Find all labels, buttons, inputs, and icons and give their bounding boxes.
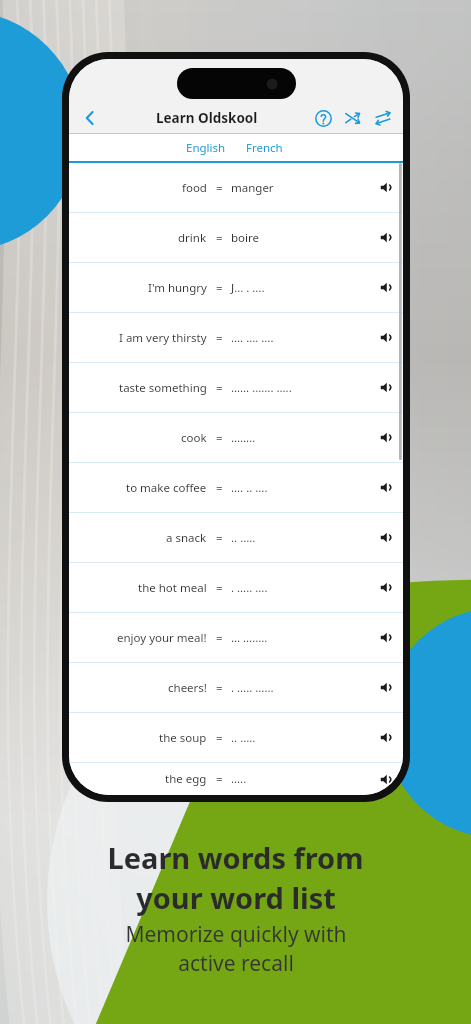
button[interactable]: the hot meal bbox=[69, 563, 403, 612]
button[interactable]: English bbox=[69, 134, 226, 161]
staticText: …….. bbox=[231, 430, 256, 446]
staticText: to make coffee bbox=[126, 480, 207, 496]
staticText: … …….. bbox=[231, 630, 268, 646]
button[interactable]: Play pronunciation bbox=[369, 313, 403, 362]
button[interactable]: Back bbox=[77, 105, 103, 131]
button[interactable]: drink bbox=[69, 213, 403, 262]
staticText: = bbox=[216, 430, 223, 446]
staticText: cheers! bbox=[168, 680, 207, 696]
button[interactable]: Play pronunciation bbox=[369, 363, 403, 412]
staticText: = bbox=[216, 180, 223, 196]
staticText: enjoy your meal! bbox=[117, 630, 207, 646]
button[interactable]: enjoy your meal! bbox=[69, 613, 403, 662]
button[interactable]: I am very thirsty bbox=[69, 313, 403, 362]
button[interactable]: Play pronunciation bbox=[369, 763, 403, 795]
staticText: the soup bbox=[159, 730, 207, 746]
staticText: = bbox=[216, 580, 223, 596]
staticText: I am very thirsty bbox=[119, 330, 207, 346]
staticText: = bbox=[216, 280, 223, 296]
button[interactable]: Shuffle bbox=[341, 106, 365, 130]
staticText: drink bbox=[178, 230, 207, 246]
staticText: food bbox=[182, 180, 207, 196]
staticText: the egg bbox=[165, 771, 207, 787]
staticText: …. .. …. bbox=[231, 480, 268, 496]
staticText: Learn words from bbox=[107, 838, 364, 877]
staticText: = bbox=[216, 771, 223, 787]
button[interactable]: Play pronunciation bbox=[369, 713, 403, 762]
button[interactable]: Help bbox=[311, 106, 335, 130]
staticText: manger bbox=[231, 180, 274, 196]
button[interactable]: taste something bbox=[69, 363, 403, 412]
staticText: French bbox=[246, 140, 283, 156]
staticText: taste something bbox=[119, 380, 207, 396]
staticText: = bbox=[216, 330, 223, 346]
staticText: . ….. …… bbox=[231, 680, 274, 696]
staticText: .. ….. bbox=[231, 730, 256, 746]
staticText: English bbox=[186, 140, 226, 156]
button[interactable]: the soup bbox=[69, 713, 403, 762]
button[interactable]: Play pronunciation bbox=[369, 263, 403, 312]
button[interactable]: French bbox=[246, 134, 403, 161]
button[interactable]: Swap languages bbox=[371, 106, 395, 130]
button[interactable]: I'm hungry bbox=[69, 263, 403, 312]
staticText: . ….. …. bbox=[231, 580, 268, 596]
button[interactable]: to make coffee bbox=[69, 463, 403, 512]
button[interactable]: cook bbox=[69, 413, 403, 462]
staticText: = bbox=[216, 380, 223, 396]
staticText: your word list bbox=[136, 878, 336, 917]
staticText: = bbox=[216, 730, 223, 746]
staticText: active recall bbox=[178, 949, 294, 978]
button[interactable]: Play pronunciation bbox=[369, 463, 403, 512]
staticText: J… . …. bbox=[231, 280, 265, 296]
button[interactable]: Play pronunciation bbox=[369, 213, 403, 262]
staticText: = bbox=[216, 630, 223, 646]
staticText: = bbox=[216, 480, 223, 496]
button[interactable]: Play pronunciation bbox=[369, 163, 403, 212]
staticText: a snack bbox=[166, 530, 207, 546]
button[interactable]: food bbox=[69, 163, 403, 212]
button[interactable]: a snack bbox=[69, 513, 403, 562]
button[interactable]: Play pronunciation bbox=[369, 613, 403, 662]
staticText: …. …. …. bbox=[231, 330, 274, 346]
button[interactable]: Play pronunciation bbox=[369, 513, 403, 562]
staticText: cook bbox=[181, 430, 207, 446]
staticText: the hot meal bbox=[138, 580, 207, 596]
button[interactable]: Play pronunciation bbox=[369, 413, 403, 462]
button[interactable]: the egg bbox=[69, 763, 403, 795]
staticText: Memorize quickly with bbox=[125, 920, 347, 949]
staticText: ….. bbox=[231, 771, 247, 787]
staticText: = bbox=[216, 680, 223, 696]
staticText: I'm hungry bbox=[148, 280, 207, 296]
staticText: = bbox=[216, 530, 223, 546]
button[interactable]: Play pronunciation bbox=[369, 563, 403, 612]
staticText: .. ….. bbox=[231, 530, 256, 546]
staticText: Learn Oldskool bbox=[156, 109, 258, 127]
button[interactable]: Play pronunciation bbox=[369, 663, 403, 712]
staticText: = bbox=[216, 230, 223, 246]
staticText: …… ……. ….. bbox=[231, 380, 292, 396]
button[interactable]: cheers! bbox=[69, 663, 403, 712]
staticText: boire bbox=[231, 230, 260, 246]
